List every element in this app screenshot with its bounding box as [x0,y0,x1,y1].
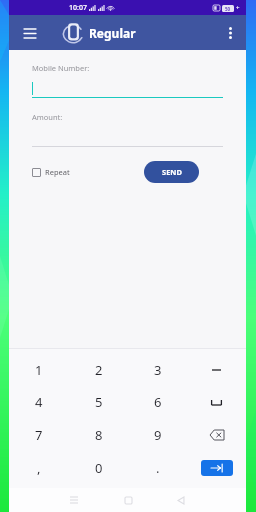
staticText: 0 [95,459,103,477]
staticText: + [236,4,240,12]
button[interactable]: 6 [128,386,187,418]
staticText: Repeat [45,167,70,177]
button[interactable]: Enter [187,451,246,484]
staticText: 2 [95,361,103,379]
button[interactable]: More options [220,23,240,43]
staticText: . [156,459,160,477]
button[interactable]: . [128,451,187,484]
staticText: SEND [162,167,182,177]
button[interactable]: Repeat [32,167,70,177]
staticText: Amount: [32,112,63,122]
button[interactable]: Backspace [187,418,246,451]
staticText: Regular [89,25,136,41]
staticText: 7 [35,426,43,444]
staticText: 3 [154,361,162,379]
button[interactable]: 2 [69,354,128,386]
staticText: 1 [35,361,43,379]
button[interactable]: 3 [128,354,187,386]
staticText: 5 [95,393,103,411]
staticText: Mobile Number: [32,63,90,73]
button[interactable]: , [9,451,69,484]
staticText: 10:07 [69,3,87,13]
staticText: , [37,459,41,477]
staticText: 9 [154,426,162,444]
button[interactable]: 0 [69,451,128,484]
staticText: 6 [154,393,162,411]
staticText: 8 [95,426,103,444]
button[interactable]: 4 [9,386,69,418]
button[interactable]: Recent apps [63,489,85,511]
button[interactable]: Back [170,489,192,511]
button[interactable] [32,122,223,147]
button[interactable]: 7 [9,418,69,451]
button[interactable]: Space [187,386,246,418]
button[interactable]: Home [117,489,139,511]
button[interactable]: Dash [187,354,246,386]
button[interactable]: 9 [128,418,187,451]
button[interactable]: 8 [69,418,128,451]
button[interactable]: Open navigation menu [19,22,41,44]
button[interactable]: SEND [144,161,199,183]
staticText: 4 [35,393,43,411]
button[interactable]: 1 [9,354,69,386]
button[interactable] [32,73,223,98]
button[interactable]: 5 [69,386,128,418]
staticText: 50 [225,6,231,12]
